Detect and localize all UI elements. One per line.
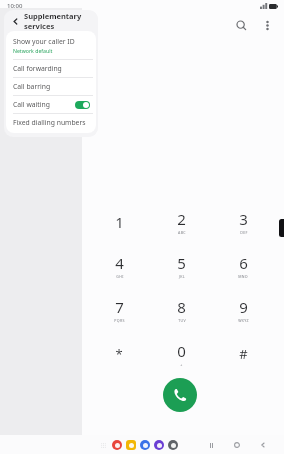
button[interactable]: 2	[150, 200, 212, 244]
staticText: #	[239, 345, 248, 363]
staticText: ABC	[178, 230, 186, 235]
staticText: 8	[177, 297, 186, 317]
staticText: Network default	[13, 47, 53, 54]
staticText: MNO	[238, 274, 248, 279]
staticText: Supplementary services	[24, 11, 98, 31]
staticText: WXYZ	[238, 318, 249, 323]
staticText: 7	[115, 297, 124, 317]
button[interactable]: 4	[88, 244, 150, 288]
button[interactable]: 6	[212, 244, 274, 288]
staticText: *	[115, 345, 123, 363]
staticText: Call forwarding	[13, 64, 62, 73]
staticText: +	[180, 362, 183, 367]
button[interactable]: Call waiting	[6, 96, 96, 113]
button[interactable]: More options	[256, 14, 278, 36]
button[interactable]: 0	[150, 332, 212, 376]
button[interactable]: Edge panel handle	[279, 219, 284, 237]
button[interactable]: 5	[150, 244, 212, 288]
button[interactable]: 1	[88, 200, 150, 244]
button[interactable]: App 5	[168, 440, 178, 450]
staticText: 0	[177, 341, 186, 361]
button[interactable]: All apps	[99, 441, 107, 449]
button[interactable]: Fixed dialling numbers	[6, 114, 96, 131]
staticText: Call waiting	[13, 100, 75, 109]
staticText: Fixed dialling numbers	[13, 118, 86, 127]
button[interactable]: App 4	[154, 440, 164, 450]
staticText: 9	[239, 297, 248, 317]
button[interactable]: #	[212, 332, 274, 376]
button[interactable]: Call barring	[6, 78, 96, 95]
button[interactable]: Show your caller ID	[6, 31, 96, 59]
staticText: 6	[239, 253, 248, 273]
staticText: PQRS	[114, 318, 125, 323]
button[interactable]: App 2	[126, 440, 136, 450]
staticText: 10:00	[7, 2, 23, 10]
button[interactable]: Back	[4, 10, 98, 31]
staticText: 5	[177, 253, 186, 273]
staticText: Call barring	[13, 82, 51, 91]
button[interactable]: Home	[230, 438, 244, 452]
button[interactable]: App 1	[112, 440, 122, 450]
button[interactable]: Back	[256, 438, 270, 452]
button[interactable]: App 3	[140, 440, 150, 450]
button[interactable]: 7	[88, 288, 150, 332]
button[interactable]: Search	[230, 14, 252, 36]
button[interactable]: 8	[150, 288, 212, 332]
button[interactable]: 9	[212, 288, 274, 332]
button[interactable]: *	[88, 332, 150, 376]
staticText: Show your caller ID	[13, 37, 75, 46]
staticText: 2	[177, 209, 186, 229]
staticText: 1	[115, 212, 124, 232]
staticText: 4	[115, 253, 124, 273]
button[interactable]: Call	[163, 378, 197, 412]
button[interactable]: Recent apps	[204, 438, 218, 452]
staticText: JKL	[179, 274, 185, 279]
staticText: GHI	[116, 274, 124, 279]
button[interactable]: Call forwarding	[6, 60, 96, 77]
staticText: DEF	[240, 230, 248, 235]
staticText: 3	[239, 209, 248, 229]
button[interactable]: Back	[9, 15, 21, 27]
staticText: TUV	[178, 318, 186, 323]
button[interactable]: 3	[212, 200, 274, 244]
